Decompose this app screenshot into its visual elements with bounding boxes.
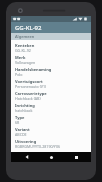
button[interactable]: Back xyxy=(18,152,36,162)
staticText: Merk xyxy=(15,55,26,60)
staticText: Carrosserietype xyxy=(15,91,47,96)
button[interactable]: GG-KL-92 xyxy=(11,22,91,33)
button[interactable]: Home xyxy=(42,152,60,162)
staticText: GG-KL-92 xyxy=(15,24,42,32)
staticText: 6R xyxy=(15,120,20,125)
staticText: Personenauto (V1) xyxy=(15,84,47,89)
button[interactable]: Kenteken xyxy=(15,42,88,54)
staticText: Uitvoering xyxy=(15,139,37,144)
staticText: GG-KL-92 xyxy=(15,48,31,53)
button[interactable]: Merk xyxy=(15,54,88,66)
staticText: Polo xyxy=(15,72,23,77)
button[interactable]: Recent apps xyxy=(67,152,85,162)
button[interactable]: Voertuigsoort xyxy=(15,78,88,90)
staticText: Algemeen xyxy=(15,34,35,39)
staticText: Inrichting xyxy=(15,103,35,108)
button[interactable]: Carrosserietype xyxy=(15,90,88,102)
staticText: Variant xyxy=(15,127,30,132)
staticText: Hatchback (AB) xyxy=(15,96,41,101)
button[interactable]: Inrichting xyxy=(15,102,88,114)
staticText: Handelsbenaming xyxy=(15,67,52,72)
staticText: Volkswagen xyxy=(15,60,36,65)
staticText: RGBRGMUYYTX-28190/Y06 xyxy=(15,144,61,149)
staticText: ABCDE xyxy=(15,132,27,137)
staticText: hatchback xyxy=(15,108,33,113)
staticText: Kenteken xyxy=(15,43,35,48)
button[interactable]: Type xyxy=(15,114,88,126)
staticText: Type xyxy=(15,115,25,120)
button[interactable]: Variant xyxy=(15,126,88,138)
button[interactable]: Uitvoering xyxy=(15,138,88,150)
staticText: Voertuigsoort xyxy=(15,79,43,84)
button[interactable]: Handelsbenaming xyxy=(15,66,88,78)
